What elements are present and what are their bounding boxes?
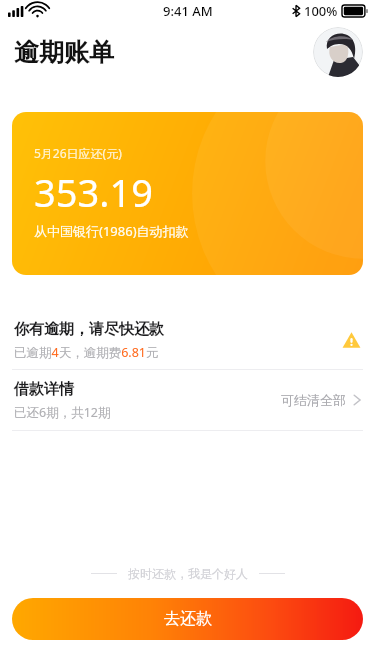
button[interactable]: 借款详情 <box>0 370 375 430</box>
staticText: 已还6期，共12期 <box>14 404 111 421</box>
staticText: 逾期账单 <box>14 37 114 68</box>
staticText: 去还款 <box>164 609 212 629</box>
staticText: 你有逾期，请尽快还款 <box>14 320 164 339</box>
button[interactable]: 你有逾期，请尽快还款 <box>0 311 375 369</box>
staticText: 可结清全部 <box>281 392 346 408</box>
staticText: 5月26日应还(元) <box>34 145 122 161</box>
button[interactable]: 去还款 <box>12 598 363 640</box>
button[interactable]: Profile <box>313 27 363 77</box>
staticText: 已逾期4天，逾期费6.81元 <box>14 344 159 361</box>
staticText: 353.19 <box>34 166 153 218</box>
staticText: 9:41 AM <box>163 2 213 20</box>
other: Warning <box>342 331 361 350</box>
staticText: 100% <box>304 2 338 20</box>
staticText: 按时还款，我是个好人 <box>128 566 248 581</box>
staticText: 从中国银行(1986)自动扣款 <box>34 222 189 240</box>
button[interactable]: 5月26日应还(元) <box>12 112 363 275</box>
staticText: 借款详情 <box>14 380 74 399</box>
